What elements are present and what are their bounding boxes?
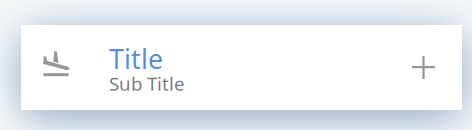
button[interactable]: Title bbox=[21, 25, 462, 110]
staticText: Sub Title bbox=[109, 71, 185, 96]
button[interactable]: Add bbox=[401, 45, 446, 90]
staticText: Title bbox=[109, 41, 163, 76]
